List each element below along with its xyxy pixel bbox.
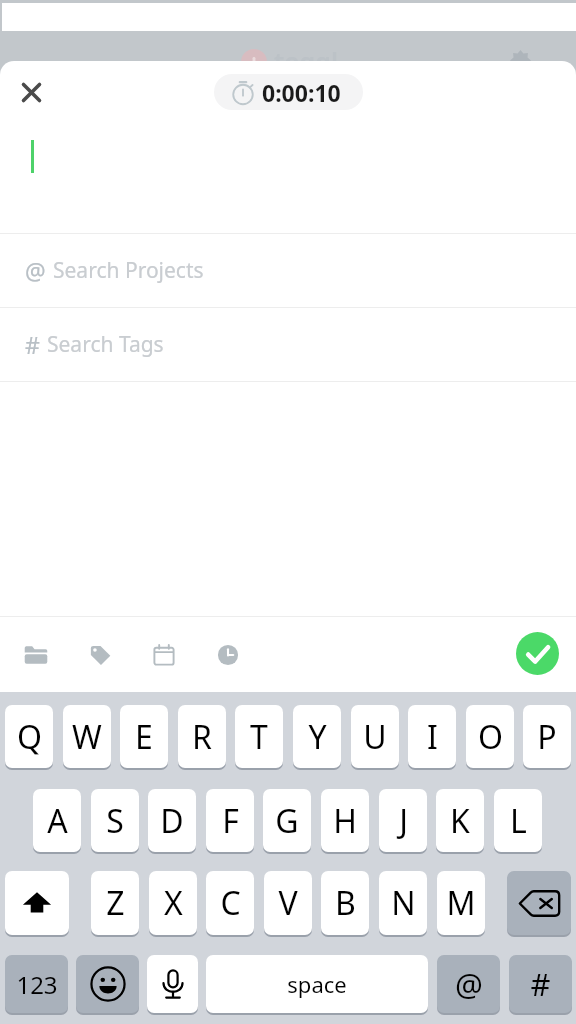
- staticText: J: [399, 799, 408, 843]
- button[interactable]: I: [408, 705, 456, 768]
- button[interactable]: Close: [9, 70, 53, 114]
- staticText: @: [455, 963, 483, 1005]
- staticText: L: [510, 799, 527, 843]
- button[interactable]: Z: [91, 871, 139, 935]
- staticText: C: [220, 881, 241, 925]
- button[interactable]: G: [263, 789, 311, 852]
- button[interactable]: P: [523, 705, 571, 768]
- staticText: R: [192, 715, 212, 759]
- button[interactable]: W: [63, 705, 111, 768]
- button[interactable]: V: [264, 871, 312, 935]
- staticText: T: [250, 715, 268, 759]
- staticText: U: [363, 715, 387, 759]
- button[interactable]: F: [206, 789, 254, 852]
- staticText: G: [275, 799, 299, 843]
- button[interactable]: Duration: [196, 627, 260, 683]
- button[interactable]: @: [0, 234, 576, 307]
- button[interactable]: space: [206, 955, 428, 1013]
- staticText: A: [47, 799, 68, 843]
- staticText: Z: [106, 881, 125, 925]
- staticText: D: [160, 799, 184, 843]
- staticText: H: [333, 799, 357, 843]
- button[interactable]: Date: [132, 627, 196, 683]
- button[interactable]: Emoji: [76, 955, 139, 1013]
- button[interactable]: X: [149, 871, 197, 935]
- button[interactable]: K: [436, 789, 484, 852]
- button[interactable]: Shift: [5, 871, 69, 935]
- staticText: V: [278, 881, 298, 925]
- button[interactable]: A: [33, 789, 81, 852]
- button[interactable]: Y: [293, 705, 341, 768]
- staticText: 123: [16, 968, 58, 1001]
- staticText: S: [106, 799, 124, 843]
- staticText: M: [446, 881, 476, 925]
- staticText: @: [25, 255, 46, 286]
- button[interactable]: H: [321, 789, 369, 852]
- button[interactable]: U: [351, 705, 399, 768]
- button[interactable]: D: [148, 789, 196, 852]
- button[interactable]: Backspace: [507, 871, 571, 935]
- staticText: toggl: [274, 44, 338, 78]
- staticText: N: [391, 881, 416, 925]
- button[interactable]: S: [91, 789, 139, 852]
- button[interactable]: T: [235, 705, 283, 768]
- button[interactable]: Project: [4, 627, 68, 683]
- button[interactable]: L: [494, 789, 542, 852]
- staticText: Y: [308, 715, 327, 759]
- staticText: P: [537, 715, 557, 759]
- staticText: space: [287, 969, 347, 999]
- button[interactable]: O: [466, 705, 514, 768]
- staticText: #: [25, 329, 40, 360]
- staticText: B: [335, 881, 356, 925]
- staticText: I: [427, 715, 438, 759]
- button[interactable]: M: [437, 871, 485, 935]
- button[interactable]: Q: [5, 705, 53, 768]
- button[interactable]: Tags: [68, 627, 132, 683]
- staticText: 0:00:10: [262, 77, 341, 108]
- button[interactable]: J: [379, 789, 427, 852]
- button[interactable]: R: [178, 705, 226, 768]
- button[interactable]: #: [509, 955, 572, 1013]
- staticText: O: [478, 715, 503, 759]
- button[interactable]: 0:00:10: [214, 74, 363, 110]
- staticText: Search Projects: [53, 256, 204, 285]
- button[interactable]: 123: [5, 955, 68, 1013]
- button[interactable]: #: [0, 308, 576, 381]
- button[interactable]: C: [206, 871, 254, 935]
- staticText: F: [222, 799, 239, 843]
- staticText: Search Tags: [47, 330, 164, 359]
- staticText: Q: [17, 715, 42, 759]
- button[interactable]: Done: [516, 632, 559, 675]
- button[interactable]: @: [437, 955, 500, 1013]
- button[interactable]: N: [379, 871, 427, 935]
- staticText: #: [530, 963, 551, 1005]
- staticText: E: [135, 715, 153, 759]
- button[interactable]: E: [120, 705, 168, 768]
- staticText: X: [164, 881, 183, 925]
- button[interactable]: B: [321, 871, 369, 935]
- staticText: W: [72, 715, 102, 759]
- staticText: K: [450, 799, 470, 843]
- button[interactable]: Voice input: [147, 955, 198, 1013]
